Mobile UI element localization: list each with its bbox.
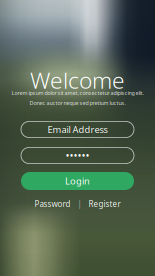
- staticText: Donec auctor neque sed pretium luctus.: [29, 99, 125, 107]
- staticText: Login: [65, 175, 90, 187]
- button[interactable]: Login: [21, 172, 134, 190]
- staticText: Lorem ipsum dolor sit amet, consectetur …: [11, 89, 143, 96]
- button[interactable]: Email Address: [21, 121, 134, 137]
- staticText: Register: [88, 199, 120, 209]
- staticText: Welcome: [30, 65, 125, 95]
- button[interactable]: Register: [88, 199, 120, 209]
- staticText: |: [77, 199, 81, 209]
- staticText: Password: [34, 199, 70, 209]
- button[interactable]: Password: [34, 199, 70, 209]
- staticText: Email Address: [47, 123, 107, 136]
- button[interactable]: ••••••: [21, 147, 134, 163]
- staticText: ••••••: [65, 148, 89, 163]
